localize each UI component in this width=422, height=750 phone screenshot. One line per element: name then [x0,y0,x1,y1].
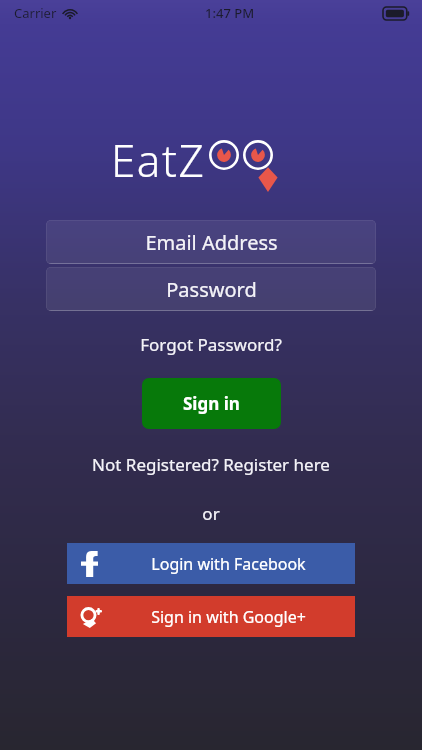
button[interactable]: Not Registered? Register here [84,451,338,478]
staticText: Login with Facebook [151,553,306,575]
staticText: or [202,502,220,525]
staticText: Password [166,276,257,303]
staticText: EatZ [111,130,206,190]
staticText: Email Address [145,229,278,256]
staticText: Not Registered? Register here [92,453,330,476]
button[interactable]: Password [46,267,376,311]
button[interactable]: Login with Facebook [67,543,355,584]
staticText: Forgot Password? [140,333,282,356]
button[interactable]: Sign in [142,378,281,429]
button[interactable]: Sign in with Google+ [67,596,355,637]
staticText: Sign in [183,392,240,415]
button[interactable]: Email Address [46,220,376,264]
staticText: 1:47 PM [205,4,255,22]
staticText: Sign in with Google+ [151,606,306,628]
staticText: Carrier [14,4,57,22]
button[interactable]: Forgot Password? [132,331,290,358]
